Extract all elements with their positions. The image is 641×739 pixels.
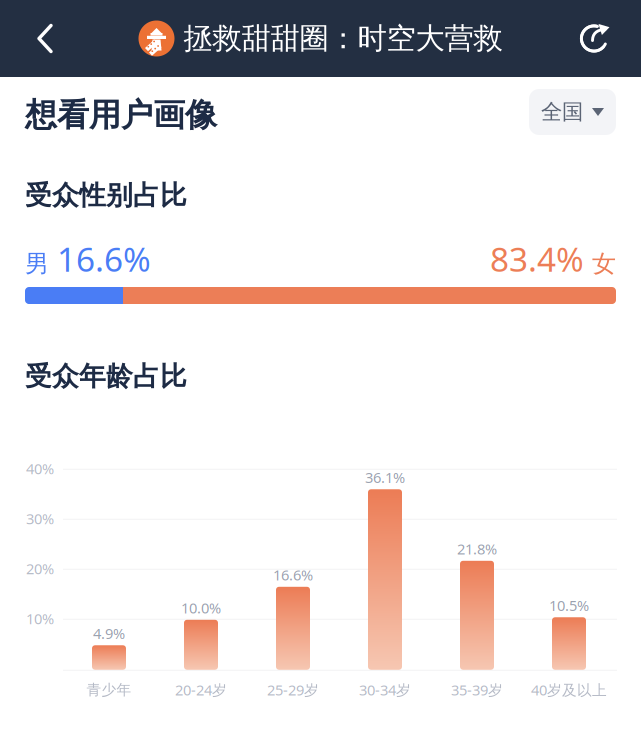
staticText: 35-39岁 (451, 680, 503, 699)
staticText: 36.1% (365, 467, 405, 487)
staticText: 40% (26, 459, 54, 478)
button[interactable]: Share (551, 0, 641, 77)
staticText: 受众年龄占比 (25, 360, 187, 393)
staticText: 16.6% (273, 565, 313, 584)
staticText: 10.0% (181, 598, 221, 617)
staticText: 21.8% (457, 539, 497, 558)
staticText: 拯救甜甜圈：时空大营救 (183, 20, 502, 56)
button[interactable]: Back (0, 0, 90, 77)
staticText: 40岁及以上 (531, 680, 607, 699)
staticText: 想看用户画像 (25, 95, 217, 135)
staticText: 16.6% (57, 237, 151, 281)
staticText: 男 (25, 249, 49, 279)
button[interactable]: 全国 (529, 92, 616, 138)
staticText: 青少年 (86, 681, 131, 699)
staticText: 女 (592, 249, 616, 279)
staticText: 10.5% (549, 595, 589, 615)
staticText: 20-24岁 (175, 680, 227, 699)
staticText: 83.4% (490, 237, 584, 281)
staticText: 4.9% (93, 623, 125, 643)
staticText: 全国 (541, 99, 583, 125)
staticText: 10% (26, 609, 54, 628)
staticText: 20% (26, 559, 54, 578)
staticText: 受众性别占比 (25, 179, 187, 212)
staticText: 25-29岁 (267, 680, 319, 699)
staticText: 30-34岁 (359, 680, 411, 699)
staticText: 30% (26, 509, 54, 528)
